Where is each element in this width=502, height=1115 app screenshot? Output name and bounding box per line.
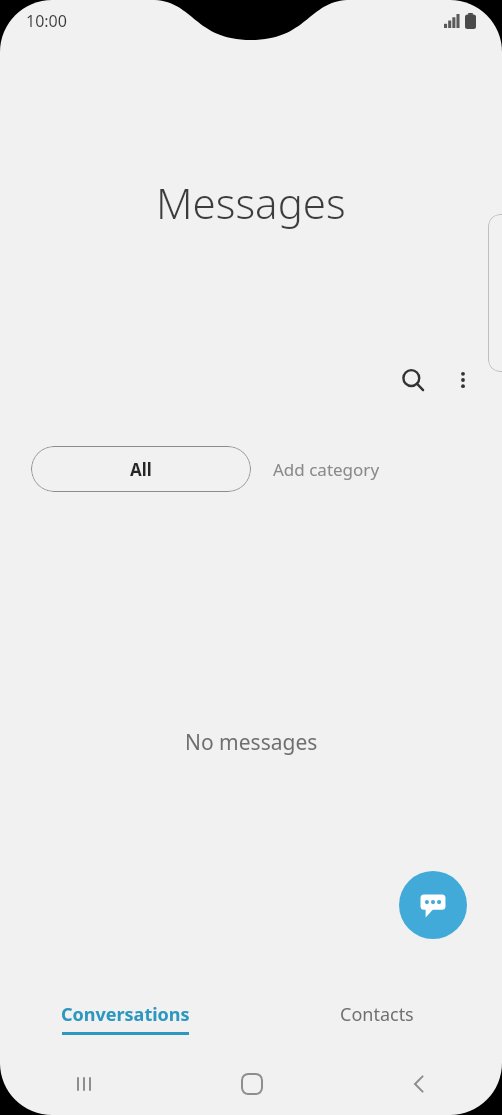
staticText: No messages [185, 728, 318, 757]
button[interactable]: All [31, 446, 251, 492]
staticText: Messages [156, 174, 346, 231]
button[interactable]: Back [335, 1053, 502, 1115]
button[interactable]: Search [390, 357, 436, 403]
button[interactable]: Home [168, 1053, 335, 1115]
button[interactable]: Recent apps [0, 1053, 168, 1115]
staticText: Add category [273, 458, 380, 481]
button[interactable]: Add category [251, 446, 402, 492]
staticText: 10:00 [26, 10, 67, 32]
staticText: Conversations [61, 1002, 190, 1027]
button[interactable]: More options [440, 357, 486, 403]
staticText: All [130, 458, 152, 481]
staticText: Contacts [340, 1002, 414, 1027]
button[interactable]: Conversations [0, 992, 251, 1044]
button[interactable]: Contacts [251, 992, 502, 1044]
button[interactable]: Edge panel handle [488, 214, 502, 372]
button[interactable]: New conversation [399, 871, 467, 939]
